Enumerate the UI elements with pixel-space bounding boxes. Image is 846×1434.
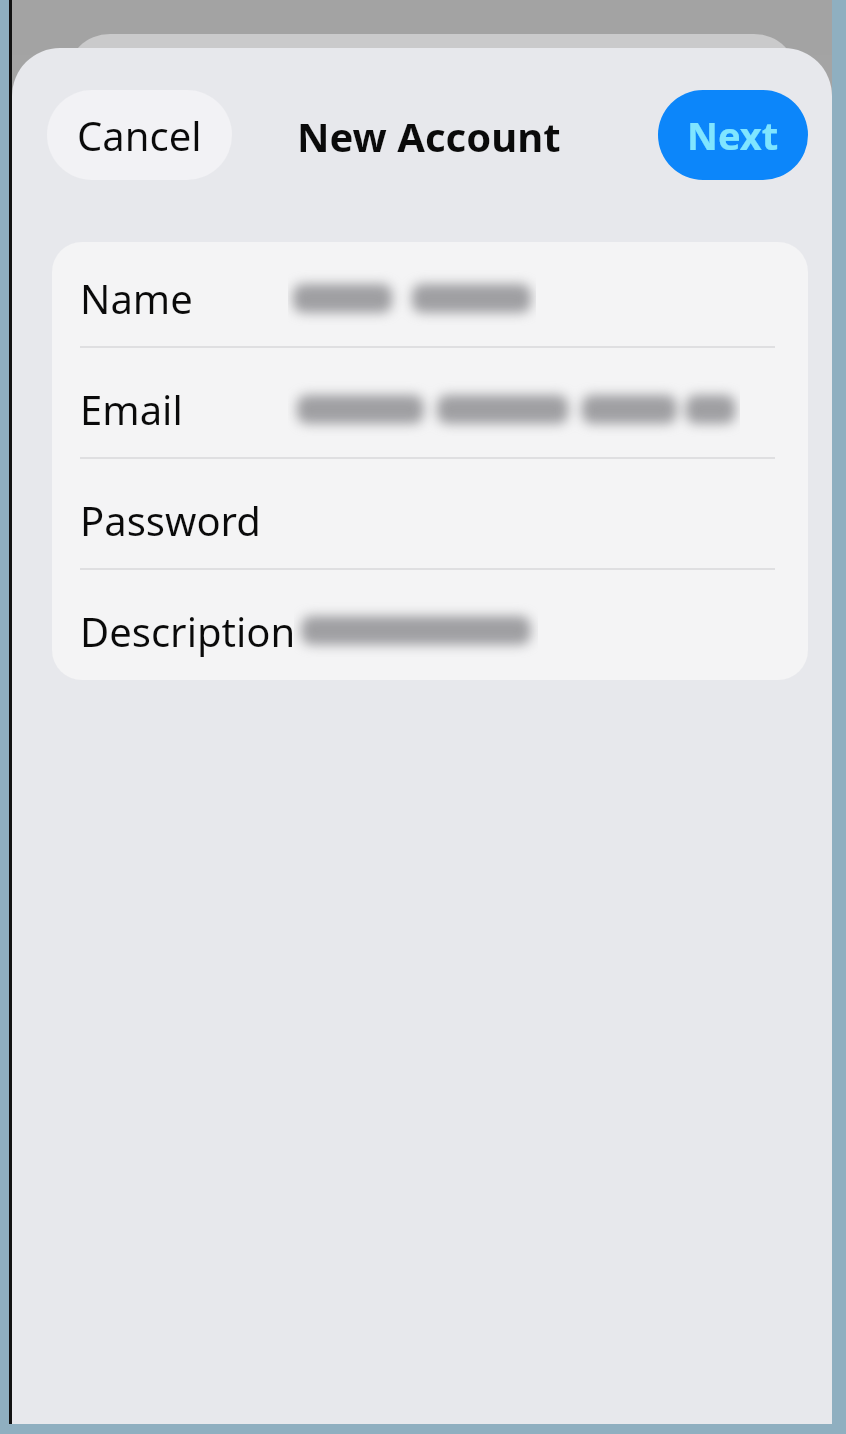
button[interactable]	[52, 464, 808, 575]
staticText: New Account	[297, 109, 561, 163]
button[interactable]	[52, 242, 808, 353]
button[interactable]	[52, 575, 808, 686]
staticText: Cancel	[77, 108, 202, 162]
button[interactable]	[52, 353, 808, 464]
button[interactable]: Cancel	[47, 90, 232, 180]
staticText: Name	[80, 271, 193, 325]
staticText: Password	[80, 493, 261, 547]
button[interactable]: Next	[658, 90, 808, 180]
staticText: Next	[687, 109, 779, 161]
staticText: Email	[80, 382, 183, 436]
staticText: Description	[80, 604, 296, 658]
